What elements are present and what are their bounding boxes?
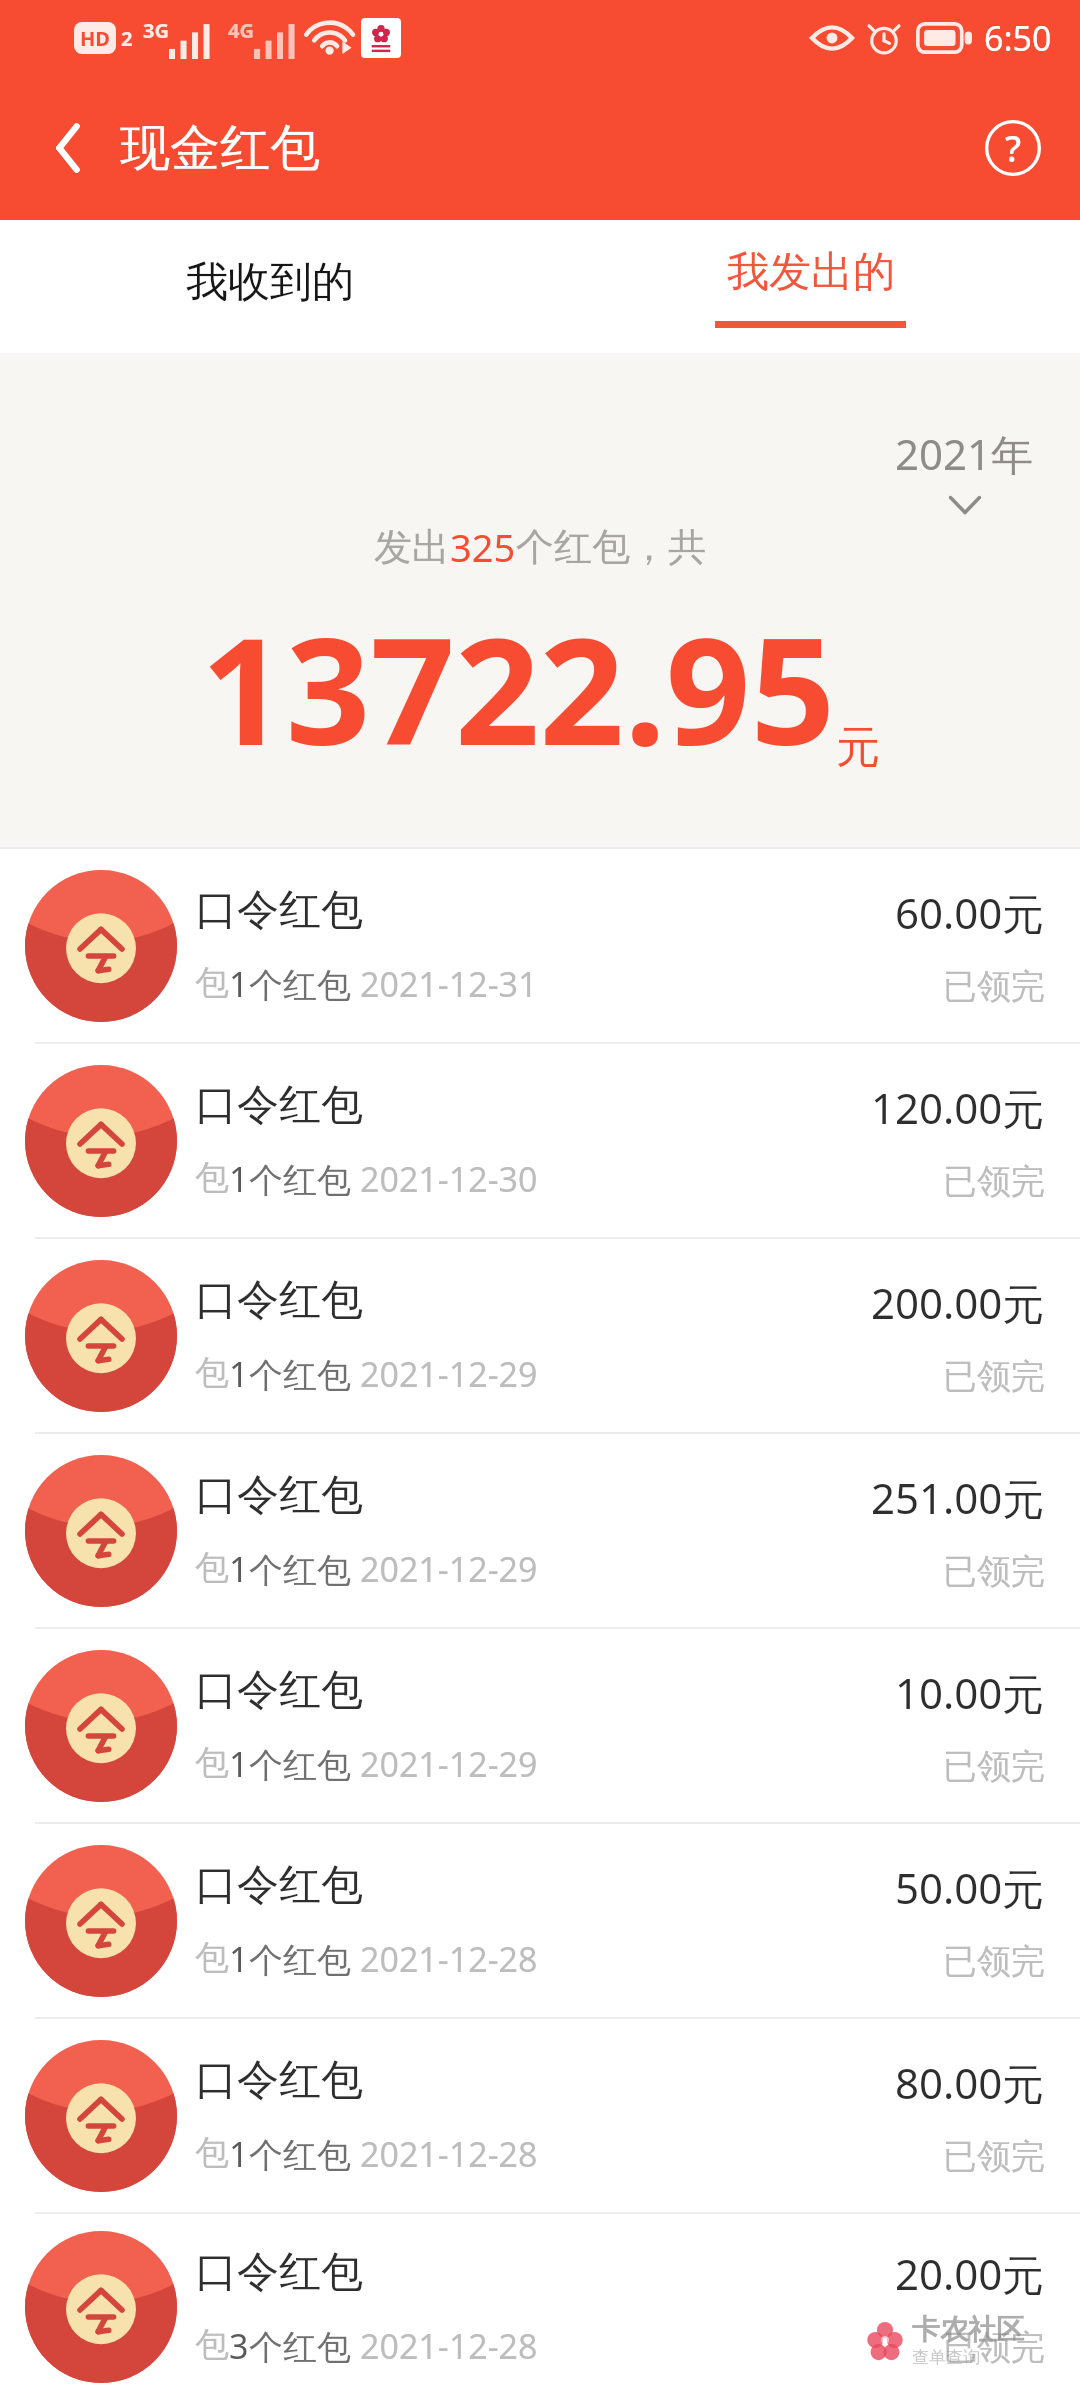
staticText: 发出 [374, 523, 450, 571]
staticText: 个红包，共 [516, 523, 706, 571]
staticText: 我收到的 [186, 256, 354, 309]
staticText: 3G [143, 17, 169, 44]
staticText: 已领完 [943, 2326, 1045, 2369]
staticText: 325 [450, 521, 516, 573]
staticText: 1 [229, 2131, 249, 2177]
staticText: 2021-12-30 [360, 1156, 538, 1202]
staticText: 口令红包 [195, 2054, 363, 2107]
staticText: 已领完 [943, 1940, 1045, 1983]
staticText: 50.00元 [895, 1859, 1045, 1916]
staticText: 查单查询 [912, 2347, 980, 2368]
staticText: 口令红包 [195, 1859, 363, 1912]
staticText: 1 [229, 961, 249, 1007]
staticText: 4G [228, 17, 254, 44]
staticText: 2021-12-28 [360, 2131, 538, 2177]
staticText: 13722.95 [201, 587, 836, 789]
staticText: 1 [229, 1741, 249, 1787]
staticText: 1 [229, 1156, 249, 1202]
staticText: 6:50 [984, 15, 1052, 61]
staticText: 200.00元 [871, 1274, 1045, 1331]
staticText: 口令红包 [195, 1469, 363, 1522]
staticText: 80.00元 [895, 2054, 1045, 2111]
staticText: 1 [229, 1546, 249, 1592]
staticText: 2021-12-29 [360, 1546, 538, 1592]
staticText: 1 [229, 1351, 249, 1397]
button[interactable]: 口令红包 [0, 2214, 1080, 2400]
staticText: 251.00元 [871, 1469, 1045, 1526]
staticText: 2 [121, 25, 133, 52]
button[interactable]: Help [968, 103, 1058, 193]
staticText: 口令红包 [195, 2246, 363, 2299]
staticText: 2021-12-29 [360, 1351, 538, 1397]
button[interactable]: 我收到的 [0, 220, 540, 353]
staticText: 2021-12-28 [360, 2323, 538, 2369]
staticText: 包 [195, 1351, 229, 1394]
button[interactable]: 口令红包 [0, 1239, 1080, 1432]
staticText: 现金红包 [120, 117, 320, 180]
staticText: HD [80, 25, 110, 52]
staticText: 已领完 [943, 965, 1045, 1008]
staticText: 个红包 [249, 1351, 360, 1397]
staticText: 120.00元 [871, 1079, 1045, 1136]
staticText: 2021-12-28 [360, 1936, 538, 1982]
staticText: 个红包 [249, 2131, 360, 2177]
button[interactable]: 口令红包 [0, 1434, 1080, 1627]
staticText: 我发出的 [727, 246, 895, 299]
staticText: ? [1005, 124, 1022, 173]
staticText: 60.00元 [895, 884, 1045, 941]
button[interactable]: 口令红包 [0, 2019, 1080, 2212]
staticText: 口令红包 [195, 1079, 363, 1132]
staticText: 已领完 [943, 2135, 1045, 2178]
staticText: 2021-12-29 [360, 1741, 538, 1787]
staticText: 已领完 [943, 1550, 1045, 1593]
staticText: 2021年 [895, 425, 1034, 482]
button[interactable]: 口令红包 [0, 1629, 1080, 1822]
staticText: 个红包 [249, 1936, 360, 1982]
button[interactable]: 口令红包 [0, 849, 1080, 1042]
staticText: 元 [836, 720, 880, 775]
button[interactable]: Back [26, 106, 110, 190]
staticText: 包 [195, 1156, 229, 1199]
staticText: 口令红包 [195, 884, 363, 937]
staticText: 10.00元 [895, 1664, 1045, 1721]
staticText: 20.00元 [895, 2245, 1045, 2302]
staticText: 3 [229, 2323, 249, 2369]
staticText: 已领完 [943, 1160, 1045, 1203]
button[interactable]: 我发出的 [540, 220, 1080, 353]
staticText: 包 [195, 2131, 229, 2174]
staticText: 卡农社区 [912, 2312, 1024, 2347]
button[interactable]: 口令红包 [0, 1044, 1080, 1237]
button[interactable]: 2021年 [895, 425, 1034, 516]
staticText: 个红包 [249, 961, 360, 1007]
staticText: 个红包 [249, 1546, 360, 1592]
staticText: 已领完 [943, 1355, 1045, 1398]
staticText: 包 [195, 1546, 229, 1589]
staticText: 个红包 [249, 1741, 360, 1787]
staticText: 包 [195, 961, 229, 1004]
staticText: 1 [229, 1936, 249, 1982]
staticText: 已领完 [943, 1745, 1045, 1788]
staticText: 2021-12-31 [360, 961, 538, 1007]
staticText: 包 [195, 2323, 229, 2366]
button[interactable]: 口令红包 [0, 1824, 1080, 2017]
staticText: 口令红包 [195, 1274, 363, 1327]
staticText: 口令红包 [195, 1664, 363, 1717]
staticText: 个红包 [249, 2323, 360, 2369]
staticText: 包 [195, 1741, 229, 1784]
staticText: 包 [195, 1936, 229, 1979]
staticText: 个红包 [249, 1156, 360, 1202]
